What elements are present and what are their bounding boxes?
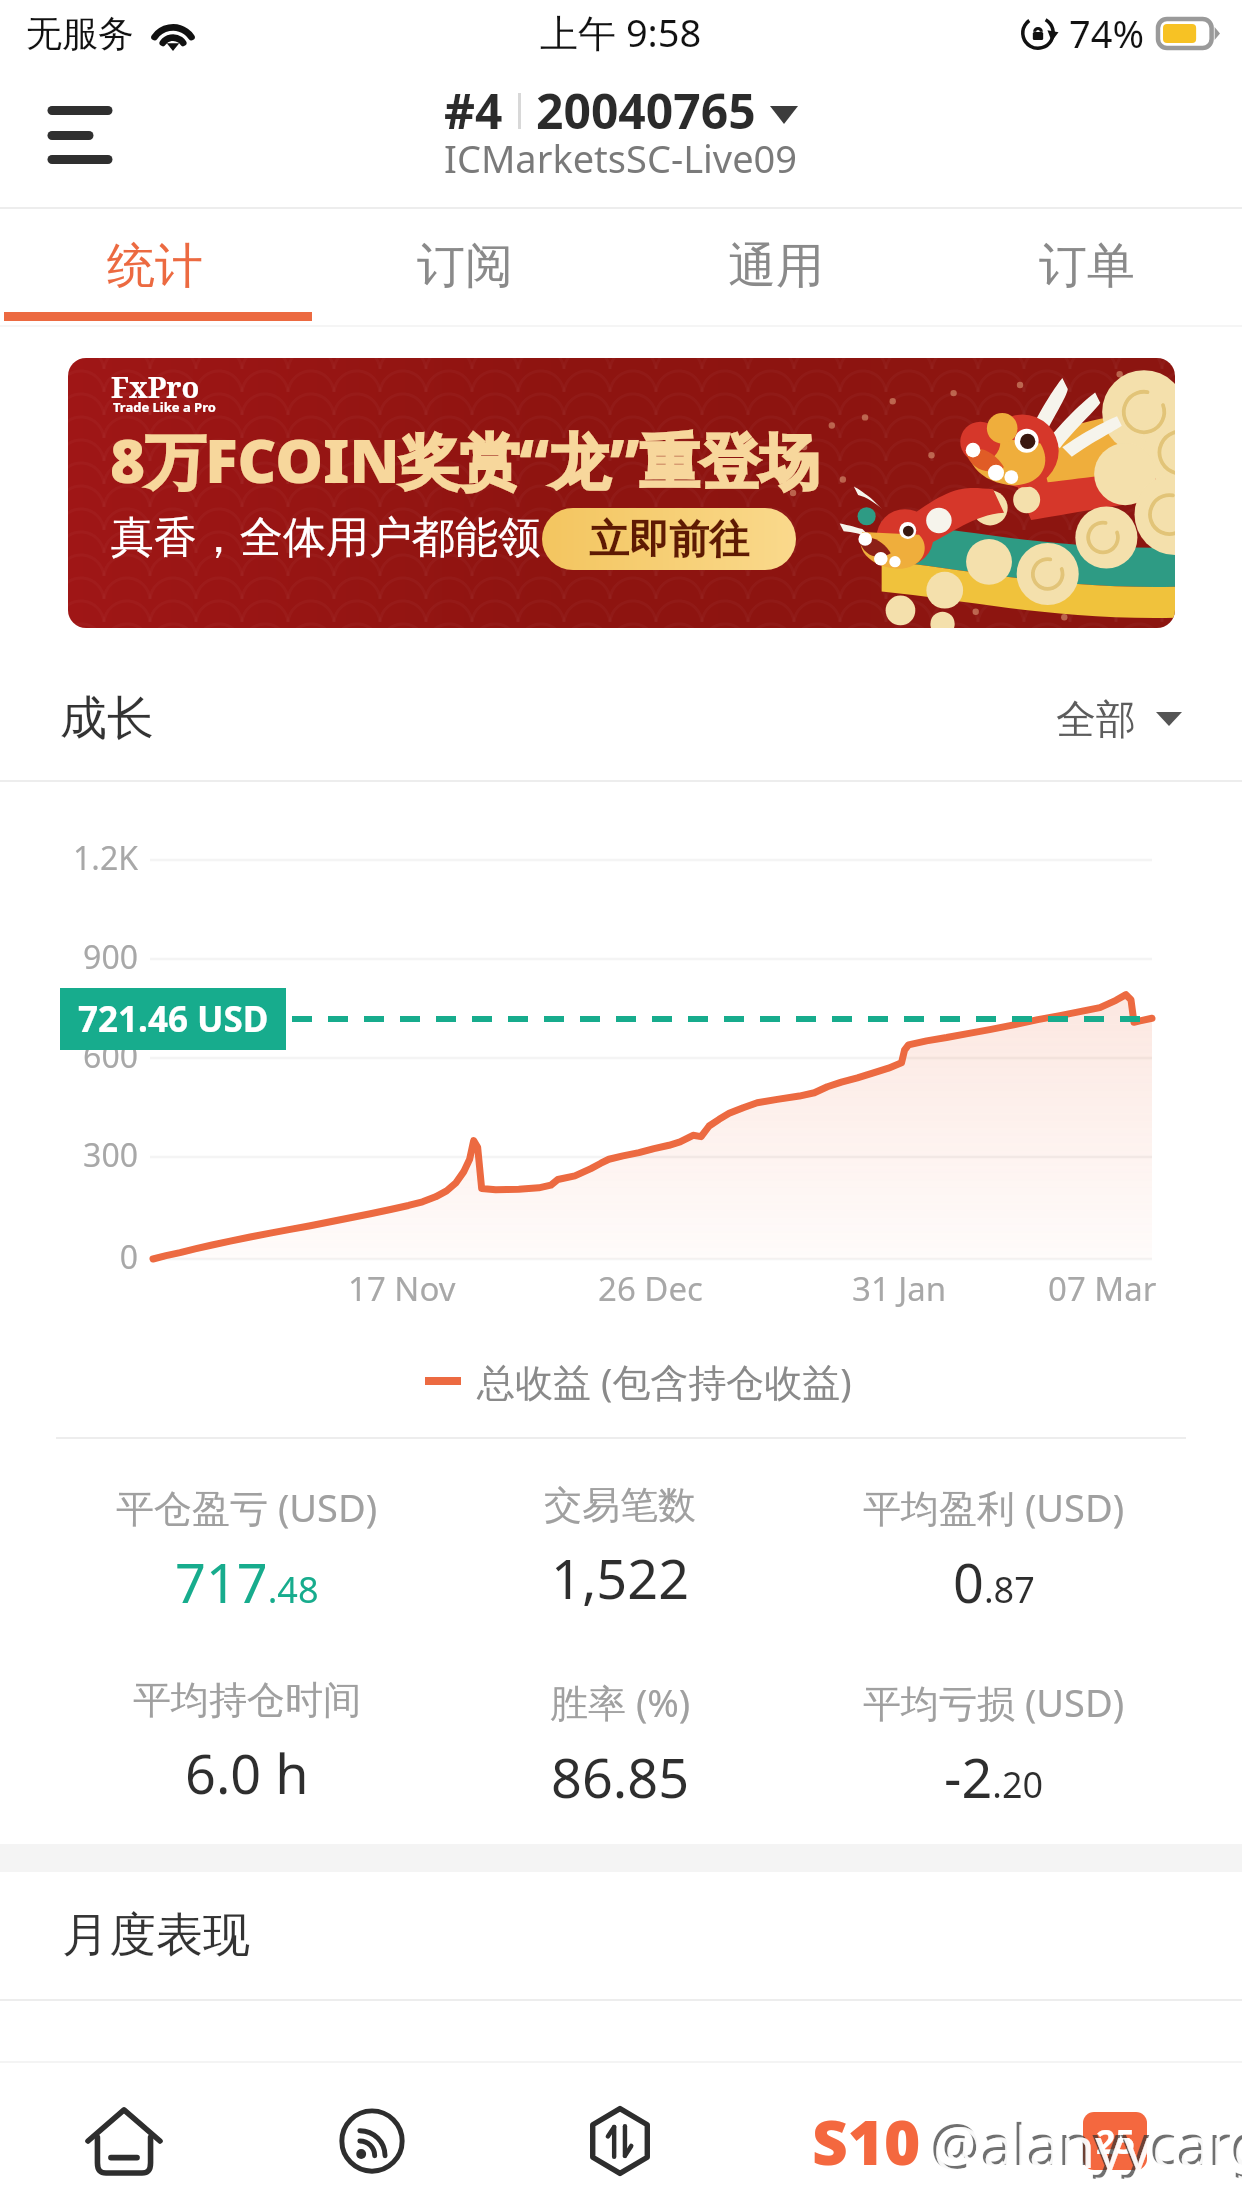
staticText: 平均持仓时间 [133,1676,361,1724]
staticText: #4 [444,78,503,143]
button[interactable]: 立即前往 [542,508,796,570]
staticText: ICMarketsSC-Live09 [444,132,798,184]
staticText: S10 [812,2099,921,2183]
button[interactable]: Signals [248,2063,496,2208]
staticText: 真香，全体用户都能领 [111,511,541,565]
staticText: 统计 [107,236,203,296]
staticText: 全部 [1056,694,1136,744]
button[interactable]: 通用 [620,207,931,327]
button[interactable]: 订单 [931,207,1242,327]
staticText: 0.87 [953,1545,1035,1619]
staticText: @alanyycargo [933,2108,1242,2184]
staticText: 立即前往 [589,514,749,564]
staticText: 721.46 USD [78,995,269,1043]
staticText: 20040765 [536,78,756,143]
staticText: -2.20 [944,1740,1044,1814]
button[interactable]: Trade [496,2063,744,2208]
staticText: Trade Like a Pro [113,398,216,416]
button[interactable]: 统计 [0,207,310,327]
button[interactable]: S10 [744,2063,992,2208]
staticText: 通用 [728,236,824,296]
staticText: 平均盈利 (USD) [863,1481,1125,1533]
staticText: 86.85 [551,1740,690,1814]
staticText: 07 Mar [1048,1266,1157,1311]
staticText: 订阅 [417,236,513,296]
staticText: 717.48 [175,1545,319,1619]
staticText: 900 [83,935,138,979]
staticText: @alanyycargo [930,2105,1242,2181]
staticText: 平仓盈亏 (USD) [116,1481,378,1533]
button[interactable]: Home [0,2063,248,2208]
button[interactable]: Menu [28,94,128,194]
staticText: 胜率 (%) [550,1676,691,1728]
staticText: FxPro [111,367,200,406]
staticText: 成长 [60,689,154,748]
staticText: 总收益 (包含持仓收益) [477,1355,852,1407]
staticText: 600 [83,1034,138,1078]
staticText: 26 Dec [598,1266,703,1311]
staticText: 1,522 [551,1541,690,1615]
staticText: 8万FCOIN奖赏“龙”重登场 [110,419,820,501]
staticText: 25 [1096,2118,1135,2164]
staticText: 31 Jan [852,1266,947,1311]
staticText: 无服务 [26,11,134,56]
staticText: 74% [1069,7,1145,59]
button[interactable]: 订阅 [310,207,620,327]
staticText: 上午 9:58 [540,6,702,58]
staticText: 订单 [1039,236,1135,296]
button[interactable]: FxPro promotion banner [68,358,1175,628]
button[interactable]: Settings [992,2063,1240,2208]
staticText: 300 [83,1133,138,1177]
staticText: 6.0 h [185,1736,309,1810]
staticText: 交易笔数 [544,1481,696,1529]
staticText: 17 Nov [348,1266,456,1311]
button[interactable]: Switch account [444,78,798,195]
staticText: 0 [119,1235,138,1279]
button[interactable]: Filter: All [1056,694,1182,744]
staticText: 月度表现 [62,1906,250,1965]
staticText: 平均亏损 (USD) [863,1676,1125,1728]
staticText: 1.2K [73,836,138,880]
